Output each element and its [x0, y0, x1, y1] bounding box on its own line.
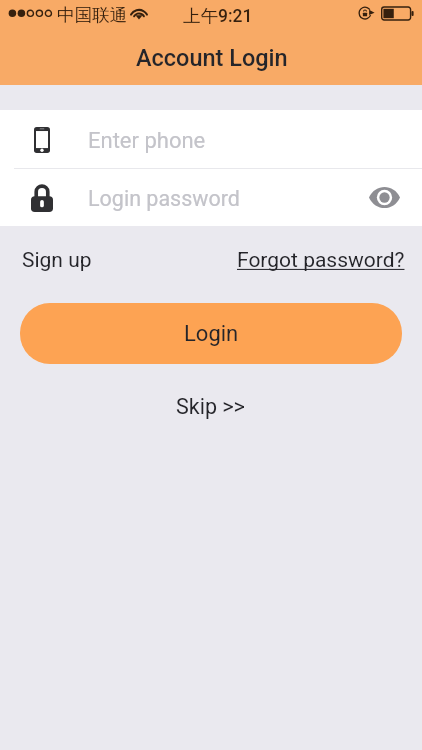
button[interactable]: Enter phone — [0, 110, 422, 168]
button[interactable]: Show password — [360, 169, 408, 226]
button[interactable]: Skip >> — [175, 393, 246, 420]
staticText: Account Login — [136, 44, 288, 72]
staticText: Skip >> — [176, 394, 245, 419]
staticText: Sign up — [22, 248, 92, 273]
button[interactable]: Forgot password? — [236, 247, 406, 274]
staticText: Forgot password? — [237, 248, 405, 273]
button[interactable]: Login password — [0, 169, 422, 226]
button[interactable]: Login — [20, 303, 402, 364]
staticText: Enter phone — [88, 128, 206, 154]
staticText: Login password — [88, 186, 240, 211]
staticText: Login — [184, 321, 239, 347]
staticText: 上午9:21 — [183, 5, 253, 27]
staticText: 中国联通 — [57, 4, 127, 26]
button[interactable]: Sign up — [21, 247, 93, 274]
